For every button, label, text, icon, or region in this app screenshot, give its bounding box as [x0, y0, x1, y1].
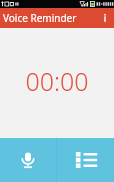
- button[interactable]: Reminder list: [57, 138, 114, 182]
- button[interactable]: Record voice reminder: [0, 138, 56, 182]
- button[interactable]: Info: [96, 8, 114, 28]
- staticText: 00:00: [0, 64, 114, 98]
- staticText: Voice Reminder: [3, 11, 77, 25]
